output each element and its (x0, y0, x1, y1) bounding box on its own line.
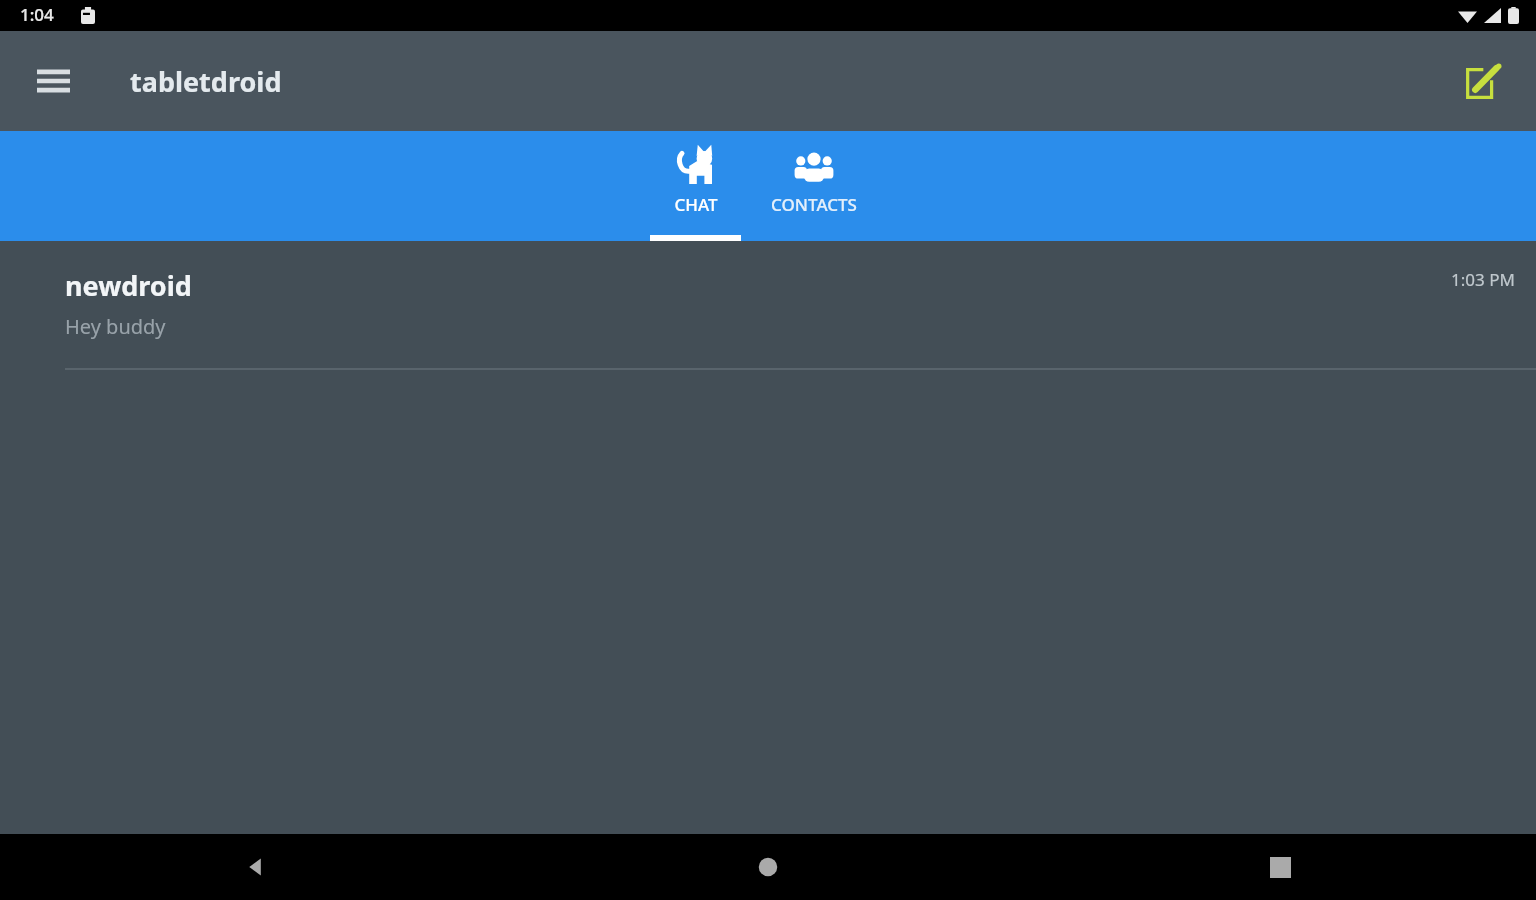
button[interactable]: CHAT (650, 131, 741, 241)
staticText: newdroid (65, 267, 192, 304)
button[interactable]: Home (512, 834, 1024, 900)
staticText: 1:03 PM (1451, 268, 1515, 291)
button[interactable]: Open navigation drawer (22, 50, 84, 112)
button[interactable]: CONTACTS (741, 131, 886, 241)
button[interactable]: New message (1453, 50, 1515, 112)
staticText: tabletdroid (130, 63, 282, 100)
button[interactable]: newdroid (0, 241, 1536, 370)
staticText: CONTACTS (771, 193, 857, 216)
button[interactable]: Back (0, 834, 512, 900)
staticText: Hey buddy (65, 313, 166, 340)
button[interactable]: Recent apps (1024, 834, 1536, 900)
staticText: CHAT (674, 193, 718, 216)
staticText: 1:04 (20, 3, 54, 26)
